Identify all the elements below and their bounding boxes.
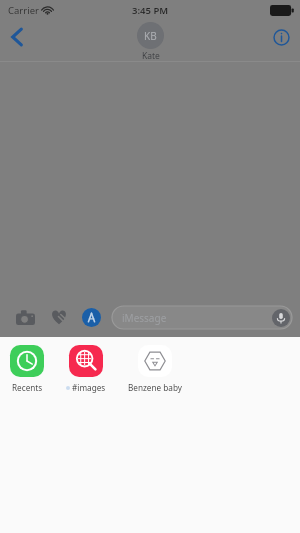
staticText: iMessage: [122, 311, 167, 325]
button[interactable]: Camera: [12, 304, 38, 330]
button[interactable]: iMessage: [112, 306, 292, 329]
staticText: Recents: [12, 382, 43, 393]
button[interactable]: KB: [137, 20, 164, 62]
button[interactable]: Details: [266, 22, 296, 52]
staticText: Carrier: [8, 4, 39, 17]
staticText: #images: [72, 382, 106, 393]
staticText: KB: [144, 29, 157, 43]
staticText: 3:45 PM: [132, 4, 169, 17]
button[interactable]: Back: [2, 22, 32, 52]
button[interactable]: Benzene baby: [128, 344, 182, 393]
button[interactable]: Digital Touch: [46, 304, 72, 330]
staticText: Kate: [142, 50, 160, 62]
button[interactable]: Record audio: [271, 308, 290, 327]
button[interactable]: #images: [66, 344, 106, 393]
button[interactable]: App Store: [78, 304, 104, 330]
button[interactable]: Recents: [10, 344, 44, 393]
staticText: Benzene baby: [128, 382, 182, 393]
